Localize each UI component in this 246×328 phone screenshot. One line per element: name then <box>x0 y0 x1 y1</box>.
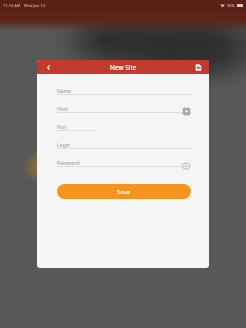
staticText: Host <box>57 106 68 113</box>
button[interactable]: Back <box>43 62 54 73</box>
staticText: 96% <box>227 3 235 8</box>
button[interactable]: Scan <box>181 106 191 116</box>
staticText: Port <box>57 124 67 131</box>
staticText: Password <box>57 160 80 167</box>
button[interactable]: Save <box>57 184 191 199</box>
button[interactable]: Show password <box>181 161 191 171</box>
staticText: Name <box>57 88 72 95</box>
staticText: Save <box>117 188 131 196</box>
staticText: 11:14 AM <box>3 3 21 8</box>
staticText: Login <box>57 142 71 149</box>
staticText: Wed Jun 12 <box>24 3 46 8</box>
button[interactable]: Import key <box>193 62 204 73</box>
staticText: New Site <box>110 63 137 72</box>
